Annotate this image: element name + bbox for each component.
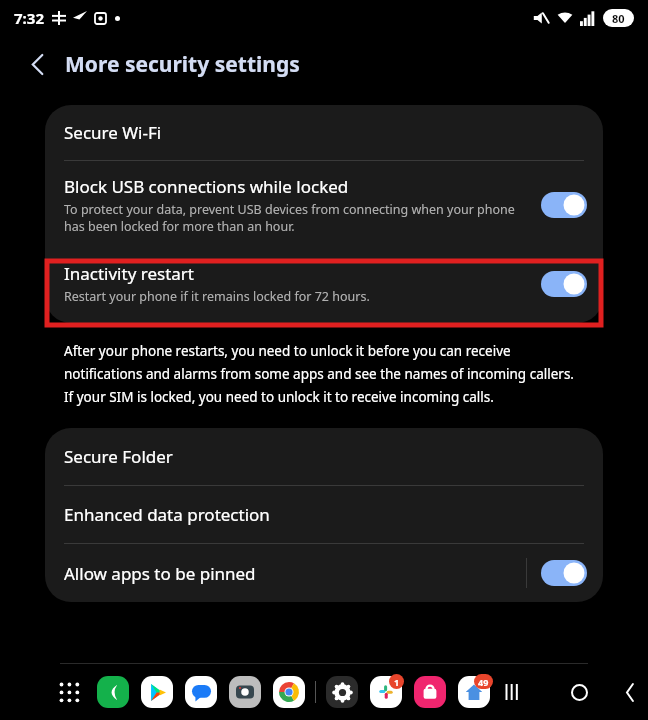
- button[interactable]: Toggle on: [541, 271, 587, 297]
- staticText: Inactivity restart: [64, 262, 194, 285]
- button[interactable]: Toggle on: [541, 192, 587, 218]
- staticText: Secure Wi-Fi: [64, 121, 162, 144]
- staticText: More security settings: [65, 50, 300, 79]
- staticText: After your phone restarts, you need to u…: [64, 342, 584, 406]
- staticText: 7:32: [14, 8, 44, 28]
- button[interactable]: App: [182, 673, 220, 711]
- button[interactable]: Enhanced data protection: [45, 486, 603, 543]
- staticText: Secure Folder: [64, 445, 173, 468]
- staticText: Restart your phone if it remains locked …: [64, 288, 370, 305]
- staticText: 80: [612, 11, 625, 26]
- staticText: Allow apps to be pinned: [64, 562, 256, 585]
- button[interactable]: Block USB connections while locked: [45, 161, 603, 249]
- button[interactable]: Apps: [52, 675, 86, 709]
- staticText: To protect your data, prevent USB device…: [64, 201, 533, 235]
- button[interactable]: App: [323, 673, 361, 711]
- button[interactable]: App: [270, 673, 308, 711]
- button[interactable]: App: [411, 673, 449, 711]
- button[interactable]: Toggle on: [541, 560, 587, 586]
- staticText: Block USB connections while locked: [64, 175, 349, 198]
- button[interactable]: Home: [559, 672, 599, 712]
- button[interactable]: App: [138, 673, 176, 711]
- button[interactable]: App: [226, 673, 264, 711]
- button[interactable]: App: [94, 673, 132, 711]
- button[interactable]: Back: [18, 44, 58, 84]
- staticText: Enhanced data protection: [64, 503, 270, 526]
- button[interactable]: Allow apps to be pinned: [45, 544, 603, 602]
- button[interactable]: Secure Folder: [45, 428, 603, 485]
- button[interactable]: App: [367, 673, 405, 711]
- staticText: 49: [478, 676, 489, 688]
- staticText: 1: [394, 676, 400, 688]
- button[interactable]: Back: [625, 672, 636, 712]
- button[interactable]: Secure Wi-Fi: [45, 105, 603, 160]
- button[interactable]: Inactivity restart: [45, 249, 603, 323]
- button[interactable]: Recents: [493, 672, 533, 712]
- button[interactable]: App: [455, 673, 493, 711]
